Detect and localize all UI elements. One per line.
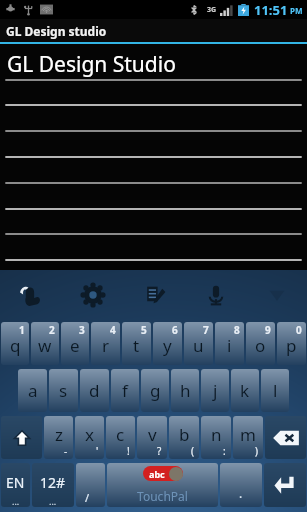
button[interactable]: s xyxy=(49,369,78,412)
staticText: g xyxy=(150,379,161,402)
staticText: r xyxy=(102,334,110,357)
button[interactable]: v xyxy=(137,416,167,459)
button[interactable]: g xyxy=(141,369,169,412)
staticText: u xyxy=(193,334,204,357)
staticText: k xyxy=(240,379,250,402)
button[interactable]: Backspace xyxy=(265,416,306,459)
staticText: 2 xyxy=(49,323,55,337)
staticText: - xyxy=(64,444,68,458)
button[interactable]: Shift xyxy=(1,416,42,459)
staticText: GL Design studio xyxy=(6,23,107,39)
staticText: m xyxy=(240,423,256,446)
staticText: l xyxy=(273,379,278,402)
button[interactable]: d xyxy=(80,369,109,412)
button[interactable]: a xyxy=(18,369,47,412)
staticText: x xyxy=(85,423,94,446)
staticText: t xyxy=(133,334,140,357)
button[interactable]: l xyxy=(261,369,289,412)
button[interactable]: n xyxy=(201,416,231,459)
staticText: 5 xyxy=(141,323,147,337)
staticText: . xyxy=(239,485,243,501)
button[interactable]: x xyxy=(75,416,104,459)
button[interactable]: j xyxy=(201,369,229,412)
button[interactable]: Close keyboard xyxy=(246,270,307,320)
staticText: GL Design Studio xyxy=(7,50,176,79)
staticText: ... xyxy=(12,495,20,507)
button[interactable]: 0 xyxy=(277,322,306,365)
staticText: ... xyxy=(49,495,57,507)
staticText: f xyxy=(122,379,128,402)
button[interactable]: 5 xyxy=(122,322,151,365)
staticText: i xyxy=(227,334,232,357)
button[interactable]: Edit note xyxy=(124,270,185,320)
staticText: z xyxy=(55,423,63,446)
button[interactable]: Enter xyxy=(264,463,306,507)
button[interactable]: f xyxy=(111,369,139,412)
staticText: ? xyxy=(157,444,162,458)
staticText: v xyxy=(148,423,157,446)
staticText: q xyxy=(10,334,21,357)
staticText: e xyxy=(70,334,80,357)
button[interactable]: z xyxy=(44,416,73,459)
staticText: y xyxy=(163,334,172,357)
staticText: ! xyxy=(127,444,130,458)
button[interactable]: 2 xyxy=(31,322,59,365)
button[interactable]: h xyxy=(171,369,199,412)
button[interactable]: Period xyxy=(220,463,262,507)
staticText: abc xyxy=(149,468,165,480)
button[interactable]: Voice input xyxy=(185,270,246,320)
staticText: d xyxy=(89,379,100,402)
button[interactable]: EN xyxy=(1,463,30,507)
staticText: p xyxy=(286,334,297,357)
staticText: 4 xyxy=(110,323,116,337)
button[interactable]: 9 xyxy=(246,322,275,365)
staticText: n xyxy=(211,423,222,446)
staticText: ) xyxy=(255,444,258,458)
button[interactable]: 4 xyxy=(91,322,120,365)
staticText: ( xyxy=(191,444,194,458)
button[interactable]: 3 xyxy=(61,322,89,365)
button[interactable]: c xyxy=(106,416,135,459)
staticText: s xyxy=(59,379,68,402)
button[interactable]: b xyxy=(169,416,199,459)
button[interactable]: Gesture input xyxy=(0,270,62,320)
button[interactable]: 12# xyxy=(32,463,74,507)
staticText: 11:51 xyxy=(254,1,288,19)
staticText: 3G xyxy=(207,5,217,15)
button[interactable]: 7 xyxy=(184,322,213,365)
staticText: : xyxy=(223,444,226,458)
staticText: a xyxy=(28,379,38,402)
staticText: 6 xyxy=(172,323,178,337)
staticText: 7 xyxy=(203,323,209,337)
staticText: c xyxy=(116,423,125,446)
staticText: 1 xyxy=(19,323,25,337)
staticText: h xyxy=(180,379,191,402)
button[interactable]: Comma xyxy=(76,463,105,507)
button[interactable]: 1 xyxy=(1,322,29,365)
button[interactable]: Space xyxy=(107,463,218,507)
staticText: PM xyxy=(290,5,303,16)
staticText: b xyxy=(179,423,190,446)
staticText: 12# xyxy=(40,473,66,492)
staticText: 0 xyxy=(296,323,302,337)
button[interactable]: 8 xyxy=(215,322,244,365)
staticText: w xyxy=(38,334,52,357)
staticText: 3 xyxy=(79,323,85,337)
staticText: ' xyxy=(96,444,99,458)
staticText: / xyxy=(85,490,90,505)
button[interactable]: Settings xyxy=(62,270,124,320)
staticText: 9 xyxy=(265,323,271,337)
staticText: o xyxy=(255,334,266,357)
button[interactable]: m xyxy=(233,416,263,459)
button[interactable]: k xyxy=(231,369,259,412)
button[interactable]: GL Design Studio xyxy=(0,44,307,270)
button[interactable]: 6 xyxy=(153,322,182,365)
staticText: EN xyxy=(6,473,25,492)
staticText: TouchPal xyxy=(137,488,188,504)
staticText: j xyxy=(213,379,218,402)
staticText: 8 xyxy=(234,323,240,337)
